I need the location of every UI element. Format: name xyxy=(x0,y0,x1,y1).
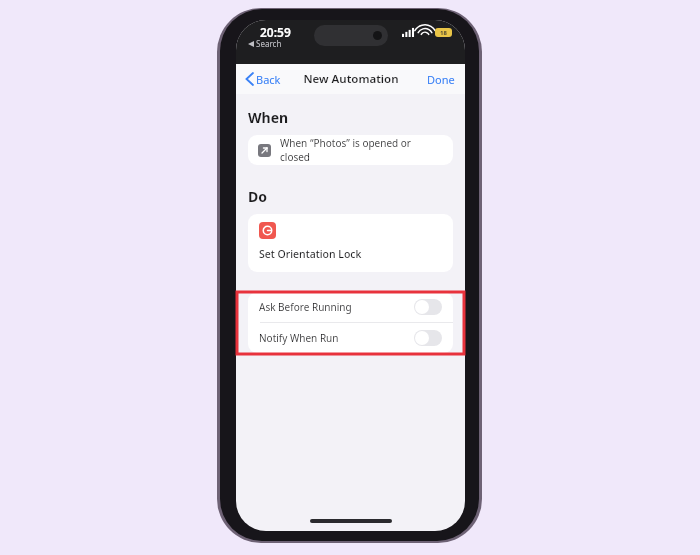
staticText: Search xyxy=(256,38,282,49)
button[interactable]: Done xyxy=(417,64,465,94)
button[interactable]: Back xyxy=(242,64,285,94)
button[interactable]: Set Orientation Lock xyxy=(248,214,453,272)
staticText: Done xyxy=(427,72,455,87)
staticText: When “Photos” is opened or closed xyxy=(280,136,443,164)
staticText: Notify When Run xyxy=(259,331,339,345)
staticText: Back xyxy=(256,72,281,87)
staticText: Do xyxy=(248,187,267,206)
staticText: Set Orientation Lock xyxy=(259,247,362,261)
staticText: 20:59 xyxy=(260,24,291,40)
button[interactable]: Ask Before Running xyxy=(248,292,453,322)
staticText: 18 xyxy=(440,29,447,37)
button[interactable]: When “Photos” is opened or closed xyxy=(248,135,453,165)
button[interactable]: Notify When Run xyxy=(248,323,453,353)
staticText: When xyxy=(248,108,289,127)
staticText: New Automation xyxy=(303,71,399,87)
staticText: Ask Before Running xyxy=(259,300,352,314)
